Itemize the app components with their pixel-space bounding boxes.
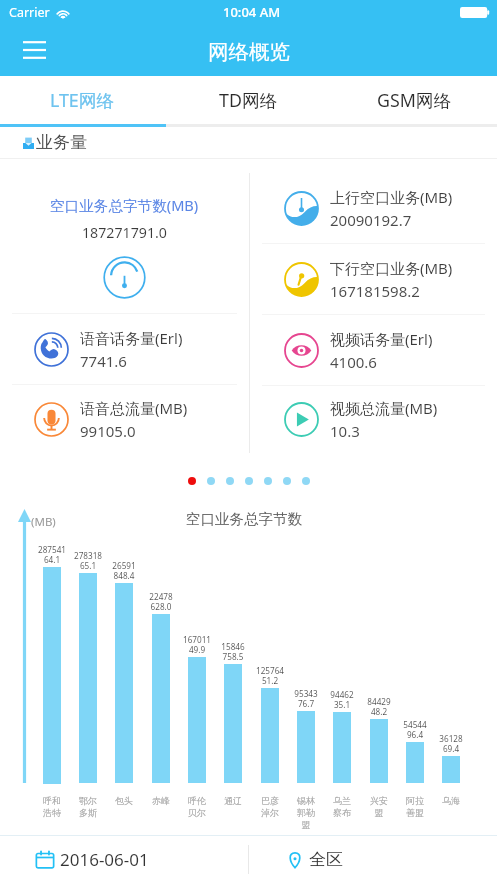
staticText: 26591 848.4 [98, 560, 150, 581]
button[interactable]: 下行空口业务(MB) [250, 244, 497, 314]
staticText: 95343 76.7 [280, 688, 332, 709]
staticText: 2016-06-01 [60, 848, 149, 871]
staticText: 10:04 AM [223, 3, 281, 21]
staticText: 兴安 盟 [358, 795, 400, 818]
staticText: 167181598.2 [330, 281, 420, 301]
button[interactable]: 视频话务量(Erl) [250, 315, 497, 385]
staticText: 包头 [103, 795, 145, 806]
staticText: 视频话务量(Erl) [330, 329, 433, 349]
button[interactable]: 空口业务总字节数(MB) [0, 173, 249, 313]
staticText: 赤峰 [140, 795, 182, 806]
staticText: 锡林 郭勒 盟 [285, 795, 327, 830]
button[interactable]: 语音总流量(MB) [0, 385, 249, 453]
staticText: 22478 628.0 [135, 591, 187, 612]
staticText: 20090192.7 [330, 210, 412, 230]
button[interactable]: TD网络 [165, 76, 331, 124]
button[interactable] [226, 477, 234, 485]
staticText: GSM网络 [377, 88, 452, 112]
button[interactable]: 视频总流量(MB) [250, 386, 497, 453]
button[interactable]: Menu [12, 28, 56, 72]
staticText: Carrier [9, 4, 50, 21]
staticText: 全区 [309, 849, 343, 870]
staticText: 业务量 [36, 132, 87, 153]
staticText: LTE网络 [50, 88, 115, 112]
button[interactable]: GSM网络 [331, 76, 497, 124]
staticText: 94462 35.1 [316, 689, 368, 710]
staticText: 36128 69.4 [425, 733, 477, 754]
button[interactable]: 2016-06-01 [0, 836, 248, 883]
button[interactable]: 上行空口业务(MB) [250, 173, 497, 243]
button[interactable] [302, 477, 310, 485]
staticText: 巴彦 淖尔 [249, 795, 291, 818]
button[interactable] [283, 477, 291, 485]
staticText: 167011 49.9 [171, 634, 223, 655]
staticText: 上行空口业务(MB) [330, 187, 453, 207]
staticText: 15846 758.5 [207, 641, 259, 662]
button[interactable] [207, 477, 215, 485]
staticText: 呼伦 贝尔 [176, 795, 218, 818]
staticText: 84429 48.2 [353, 696, 405, 717]
staticText: 乌海 [430, 795, 472, 806]
button[interactable]: 全区 [249, 836, 497, 883]
staticText: 125764 51.2 [244, 665, 296, 686]
staticText: (MB) [31, 514, 56, 530]
staticText: 278318 65.1 [62, 550, 114, 571]
staticText: 99105.0 [80, 421, 136, 441]
staticText: 呼和 浩特 [31, 795, 73, 818]
staticText: 阿拉 善盟 [394, 795, 436, 818]
staticText: 通辽 [212, 795, 254, 806]
button[interactable] [264, 477, 272, 485]
staticText: 视频总流量(MB) [330, 398, 438, 418]
staticText: 语音总流量(MB) [80, 398, 188, 418]
staticText: TD网络 [219, 88, 278, 112]
staticText: 鄂尔 多斯 [67, 795, 109, 818]
staticText: 乌兰 察布 [321, 795, 363, 818]
staticText: 187271791.0 [82, 223, 167, 242]
staticText: 7741.6 [80, 351, 127, 371]
staticText: 287541 64.1 [26, 544, 78, 565]
button[interactable] [245, 477, 253, 485]
staticText: 空口业务总字节数(MB) [50, 195, 199, 215]
staticText: 下行空口业务(MB) [330, 258, 453, 278]
button[interactable]: LTE网络 [0, 76, 165, 124]
button[interactable] [188, 477, 196, 485]
button[interactable]: 语音话务量(Erl) [0, 314, 249, 384]
staticText: 10.3 [330, 421, 360, 441]
staticText: 网络概览 [208, 39, 290, 65]
staticText: 语音话务量(Erl) [80, 328, 183, 348]
staticText: 54544 96.4 [389, 719, 441, 740]
staticText: 空口业务总字节数 [186, 510, 302, 528]
staticText: 4100.6 [330, 352, 377, 372]
